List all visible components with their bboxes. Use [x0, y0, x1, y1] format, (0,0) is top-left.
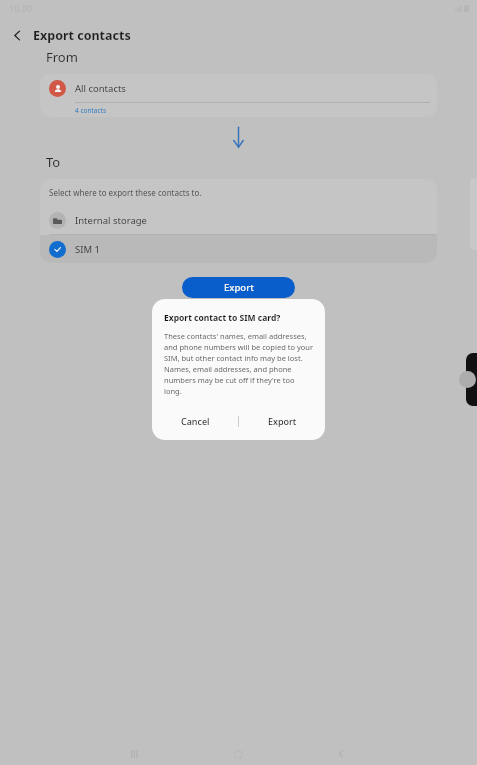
- staticText: SIM 1: [75, 243, 100, 256]
- button[interactable]: Internal storage: [40, 206, 437, 234]
- staticText: Export contact to SIM card?: [164, 312, 281, 324]
- staticText: Export: [268, 415, 297, 427]
- button[interactable]: SIM 1: [40, 235, 437, 263]
- staticText: Export: [224, 281, 254, 294]
- staticText: To: [46, 153, 61, 171]
- button[interactable]: Recents: [122, 744, 148, 764]
- button[interactable]: Export: [182, 277, 295, 298]
- staticText: All contacts: [75, 82, 126, 95]
- staticText: 10.00: [9, 2, 33, 14]
- button[interactable]: Cancel: [152, 408, 238, 434]
- staticText: Select where to export these contacts to…: [49, 187, 202, 198]
- button[interactable]: All contacts: [40, 74, 437, 102]
- staticText: Export contacts: [33, 27, 131, 44]
- button[interactable]: Edge panel handle: [466, 353, 477, 406]
- button[interactable]: Export: [239, 408, 325, 434]
- staticText: 4 contacts: [75, 106, 107, 115]
- staticText: These contacts' names, email addresses, …: [164, 331, 313, 396]
- staticText: Internal storage: [75, 214, 147, 227]
- staticText: From: [46, 48, 78, 66]
- staticText: Cancel: [181, 415, 210, 427]
- button[interactable]: Back: [6, 24, 28, 46]
